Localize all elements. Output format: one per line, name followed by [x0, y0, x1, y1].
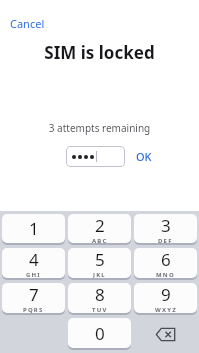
staticText: 8	[95, 283, 105, 306]
staticText: 1	[29, 217, 39, 240]
staticText: ABC	[92, 237, 108, 243]
staticText: 7	[29, 283, 39, 306]
button[interactable]: 0	[68, 318, 131, 348]
staticText: JKL	[93, 271, 106, 278]
staticText: 6	[161, 248, 171, 271]
staticText: WXYZ	[155, 306, 177, 313]
button[interactable]: 3	[134, 214, 197, 243]
button[interactable]: Cancel	[7, 15, 48, 32]
button[interactable]: SIM PIN entry	[66, 146, 125, 167]
staticText: 5	[95, 248, 105, 271]
button[interactable]: 5	[68, 248, 131, 278]
button[interactable]: 6	[134, 248, 197, 278]
button[interactable]: OK	[133, 147, 155, 166]
staticText: 3 attempts remaining	[0, 121, 199, 135]
staticText: 9	[161, 283, 171, 306]
staticText: TUV	[92, 306, 108, 313]
button[interactable]: Delete	[134, 318, 197, 350]
staticText: Cancel	[10, 16, 45, 31]
staticText: PQRS	[23, 306, 44, 313]
staticText: SIM is locked	[0, 41, 199, 64]
button[interactable]: 4	[2, 248, 65, 278]
staticText: OK	[136, 149, 152, 164]
staticText: 4	[29, 248, 39, 271]
staticText: DEF	[158, 237, 173, 243]
button[interactable]: 2	[68, 214, 131, 243]
staticText: MNO	[156, 271, 175, 278]
staticText: 2	[95, 214, 105, 237]
button[interactable]: 8	[68, 283, 131, 313]
staticText: 3	[161, 214, 171, 237]
staticText: GHI	[26, 271, 41, 278]
button[interactable]: 1	[2, 214, 65, 243]
button[interactable]: 9	[134, 283, 197, 313]
staticText: 0	[95, 322, 105, 345]
button[interactable]: 7	[2, 283, 65, 313]
